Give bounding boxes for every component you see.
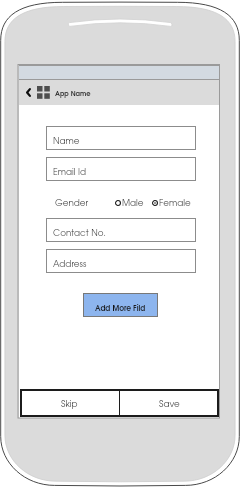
staticText: Email Id <box>53 168 86 176</box>
button[interactable]: Male <box>115 193 144 207</box>
staticText: App Name <box>55 91 91 97</box>
button[interactable]: Back <box>22 84 34 100</box>
button[interactable]: Contact No. <box>46 218 196 242</box>
button[interactable]: Female <box>152 193 191 207</box>
button[interactable]: Address <box>46 249 196 273</box>
staticText: Add More Fild <box>95 305 146 312</box>
staticText: Gender <box>55 199 89 207</box>
staticText: Skip <box>61 400 78 408</box>
button[interactable]: Add More Fild <box>83 293 158 317</box>
staticText: Contact No. <box>53 229 106 237</box>
button[interactable]: Email Id <box>46 157 196 181</box>
button[interactable]: Name <box>46 126 196 150</box>
button[interactable]: Skip <box>20 389 119 417</box>
staticText: Name <box>53 137 80 145</box>
staticText: Save <box>159 400 180 408</box>
button[interactable]: Save <box>120 389 219 417</box>
staticText: Address <box>53 260 87 268</box>
staticText: Male <box>122 199 144 207</box>
button[interactable]: Menu <box>37 86 50 99</box>
staticText: Female <box>159 199 191 207</box>
